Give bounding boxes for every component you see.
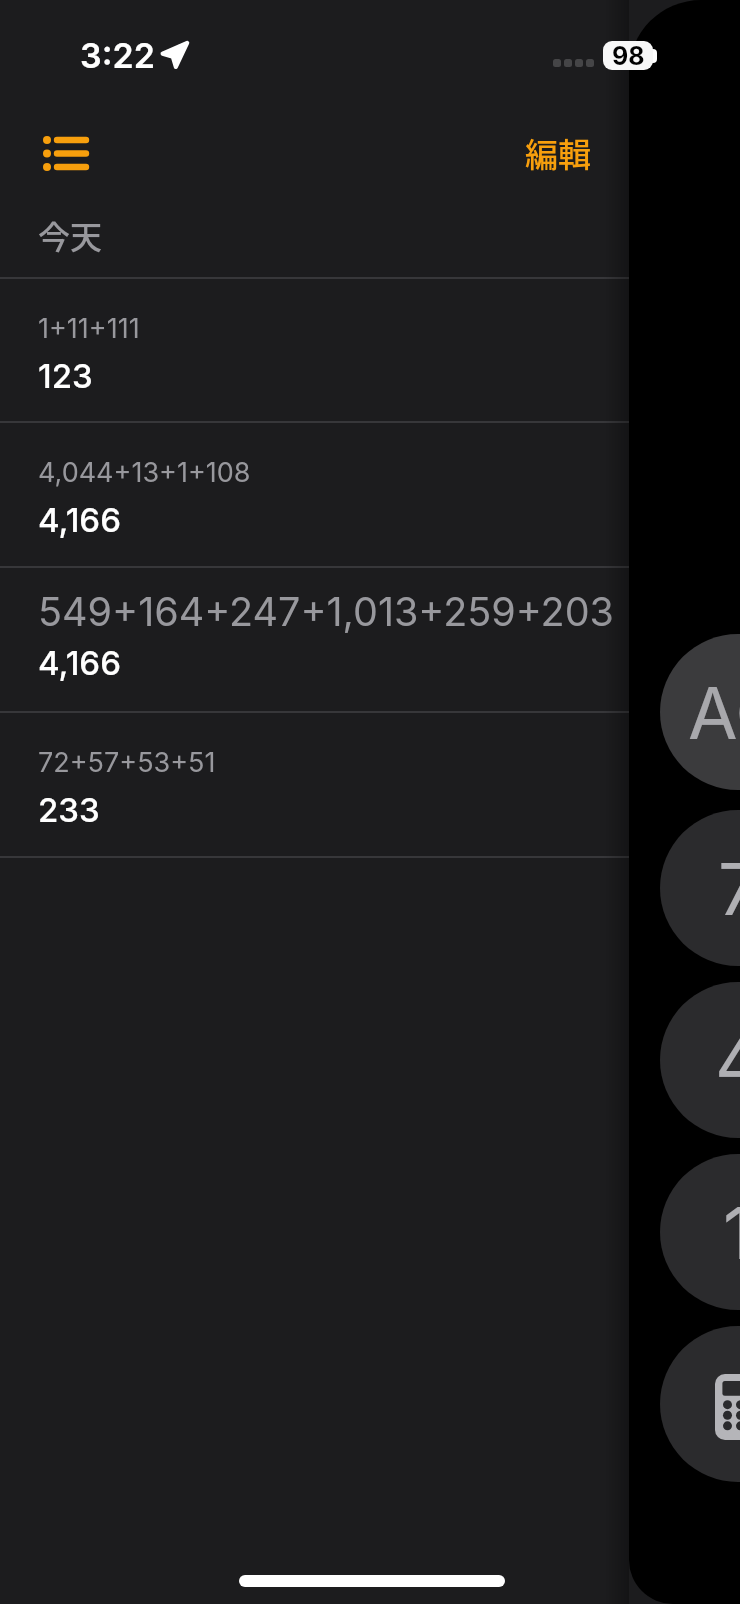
staticText: 4,044+13+1+108 [38,456,251,489]
button[interactable]: Calculator [660,1326,740,1482]
button[interactable]: 1+11+111 [0,277,629,421]
button[interactable]: 549+164+247+1,013+259+203 [0,566,629,711]
staticText: 98 [612,41,645,70]
button[interactable]: 4,044+13+1+108 [0,421,629,566]
staticText: 編輯 [525,129,591,177]
button[interactable]: List [22,115,110,191]
staticText: 72+57+53+51 [38,746,216,779]
staticText: 233 [38,790,100,830]
staticText: 3:22 [80,35,155,76]
staticText: 4,166 [38,500,121,540]
button[interactable]: 72+57+53+51 [0,711,629,856]
staticText: AC [688,669,740,756]
staticText: 4,166 [38,643,121,683]
staticText: 1 [723,1189,740,1276]
button[interactable]: AC [660,634,740,790]
staticText: 7 [718,845,740,932]
button[interactable]: 編輯 [505,116,611,190]
button[interactable]: 1 [660,1154,740,1310]
staticText: 今天 [38,212,103,258]
button[interactable]: 4 [660,982,740,1138]
staticText: 4 [715,1017,740,1104]
button[interactable]: 7 [660,810,740,966]
staticText: 549+164+247+1,013+259+203 [38,588,614,636]
staticText: 123 [38,356,93,396]
staticText: 1+11+111 [38,312,140,345]
